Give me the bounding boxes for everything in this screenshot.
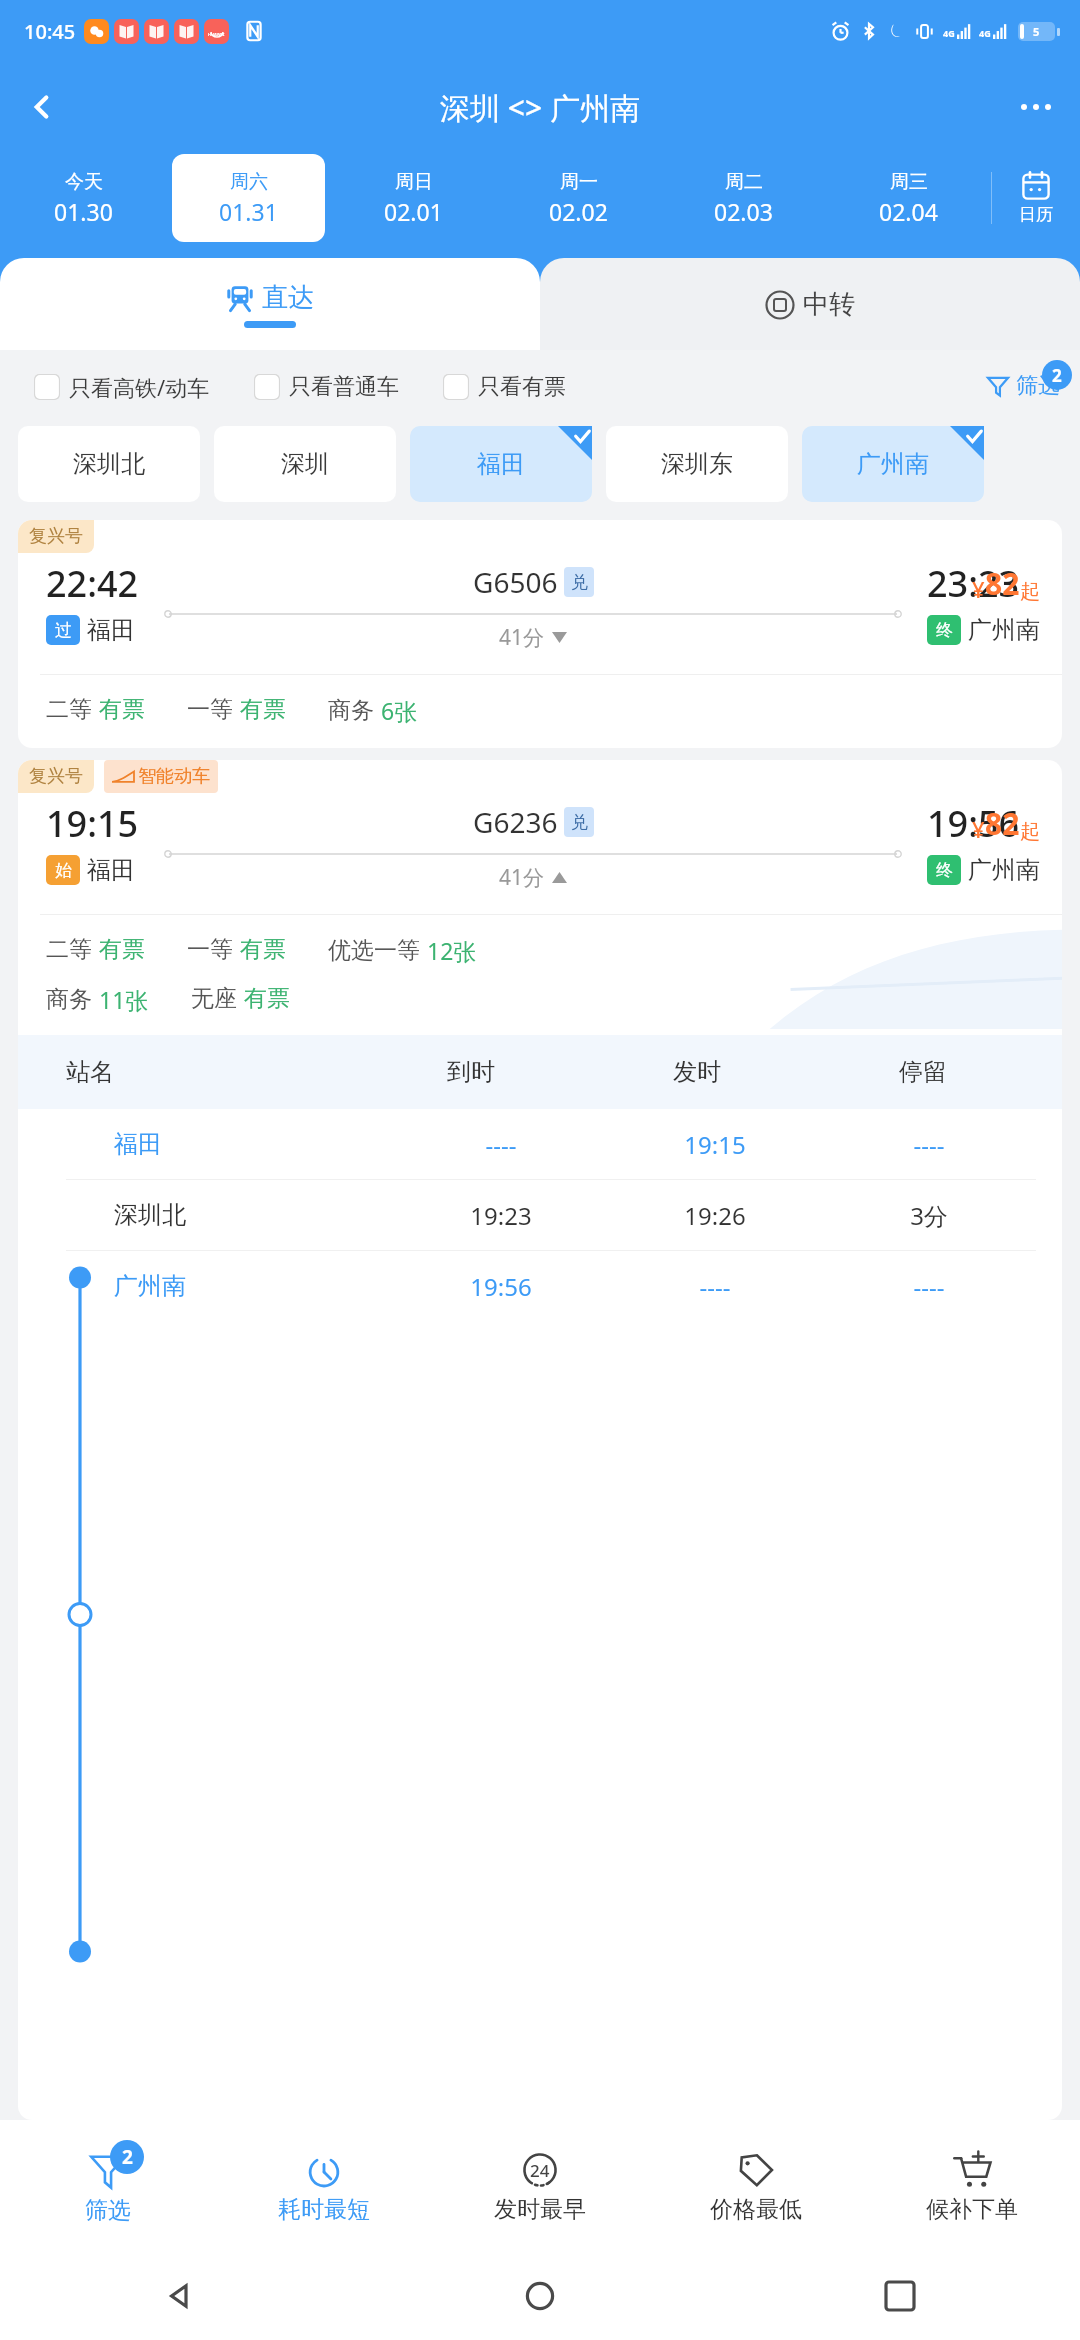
button[interactable]: 复兴号 [18,520,1062,748]
staticText: 始 [55,860,72,881]
staticText: 19:56 [927,799,1020,848]
button[interactable]: 周二 [667,154,820,242]
button[interactable]: 直达 [0,258,540,350]
staticText: 只看有票 [478,373,566,401]
staticText: 2 [122,2144,133,2170]
staticText: 复兴号 [29,765,83,788]
button[interactable]: 只看高铁/动车 [34,372,210,402]
staticText: 停留 [810,1057,1036,1087]
staticText: 发时最早 [494,2195,586,2224]
staticText: 02.03 [714,196,773,227]
staticText: 兑 [571,572,588,593]
staticText: 19:23 [394,1199,608,1232]
staticText: 福田 [87,615,135,645]
button[interactable]: 只看有票 [443,373,566,401]
staticText: G6506 [473,563,558,601]
button[interactable]: 候补下单 [864,2120,1080,2252]
staticText: 2 [1052,364,1062,387]
staticText: 优选一等 [328,936,420,965]
button[interactable]: 周六 [172,154,325,242]
staticText: 起 [1020,579,1040,604]
staticText: 12张 [427,935,477,966]
staticText: 41分 [499,863,545,892]
staticText: 站名 [66,1057,358,1087]
button[interactable]: 只看普通车 [254,373,399,401]
staticText: 19:15 [46,799,139,848]
staticText: 直达 [262,281,314,314]
staticText: 深圳北 [114,1200,394,1230]
staticText: 福田 [87,855,135,885]
staticText: 01.31 [219,196,278,227]
button[interactable]: 耗时最短 [216,2120,432,2252]
staticText: 耗时最短 [278,2195,370,2224]
staticText: 10:45 [24,18,76,45]
staticText: 19:56 [394,1270,608,1303]
staticText: 终 [936,620,953,641]
staticText: 周六 [230,170,268,194]
staticText: 终 [936,860,953,881]
staticText: 4G [979,27,991,39]
staticText: 19:15 [608,1128,822,1161]
button[interactable]: 周日 [337,154,490,242]
button[interactable]: 深圳 [214,426,396,502]
staticText: ---- [394,1128,608,1161]
staticText: 复兴号 [29,525,83,548]
staticText: 周一 [560,170,598,194]
button[interactable]: Home [360,2252,720,2340]
staticText: 深圳 <> 广州南 [440,87,640,128]
staticText: 筛选 [85,2196,131,2225]
button[interactable]: 周三 [832,154,985,242]
staticText: 过 [55,620,72,641]
staticText: 01.30 [54,196,113,227]
staticText: 广州南 [968,855,1040,885]
button[interactable]: 24 [432,2120,648,2252]
staticText: 日历 [1019,204,1053,225]
staticText: 广州南 [968,615,1040,645]
button[interactable]: 深圳北 [18,426,200,502]
staticText: 深圳 [281,449,329,479]
staticText: 候补下单 [926,2195,1018,2224]
staticText: ---- [608,1270,822,1303]
staticText: 二等 [46,935,92,964]
staticText: ¥ [972,574,985,604]
button[interactable]: 复兴号 [18,760,1062,2120]
button[interactable]: Back [14,79,70,135]
staticText: 41分 [499,623,545,652]
staticText: 价格最低 [710,2195,802,2224]
staticText: 福田 [114,1129,394,1159]
button[interactable]: Recent apps [720,2252,1080,2340]
staticText: 二等 [46,695,92,724]
staticText: 24 [530,2159,550,2182]
staticText: 广州南 [857,449,929,479]
staticText: 02.04 [879,196,938,227]
button[interactable]: 2 [0,2120,216,2252]
button[interactable]: 今天 [6,154,160,242]
button[interactable]: 周一 [502,154,655,242]
staticText: ---- [822,1270,1036,1303]
staticText: 23:23 [927,559,1020,608]
button[interactable]: 价格最低 [648,2120,864,2252]
button[interactable]: 广州南 [802,426,984,502]
staticText: 筛选 [1016,372,1060,400]
button[interactable]: 中转 [540,258,1080,350]
button[interactable]: 日历 [992,154,1080,242]
button[interactable]: 筛选 [986,372,1060,400]
staticText: 22:42 [46,559,139,608]
staticText: 11张 [99,984,149,1015]
staticText: G6236 [473,803,558,841]
button[interactable]: Back [0,2252,360,2340]
staticText: 一等 [187,695,233,724]
button[interactable]: 深圳东 [606,426,788,502]
button[interactable]: More options [1008,79,1064,135]
staticText: 今天 [65,170,103,194]
staticText: 02.01 [384,196,443,227]
button[interactable]: 福田 [410,426,592,502]
staticText: 82 [985,563,1020,604]
staticText: 周日 [395,170,433,194]
staticText: 19:26 [608,1199,822,1232]
staticText: 周三 [890,170,928,194]
staticText: 有票 [240,935,286,964]
staticText: 只看高铁/动车 [69,372,210,402]
staticText: 4G [943,27,955,39]
staticText: 02.02 [549,196,608,227]
